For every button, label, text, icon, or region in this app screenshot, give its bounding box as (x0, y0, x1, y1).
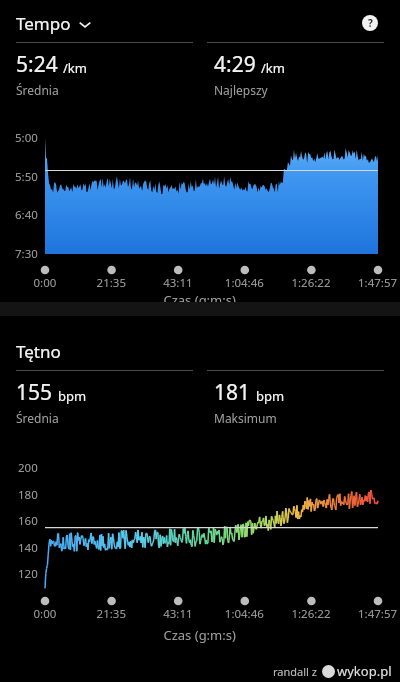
button[interactable]: Tętno (16, 340, 61, 363)
staticText: bpm (256, 387, 285, 405)
staticText: randall z (273, 664, 317, 679)
button[interactable]: Pomoc (356, 9, 384, 37)
staticText: Średnia (16, 82, 59, 98)
staticText: 5:24 (16, 50, 58, 79)
staticText: wykop.pl (337, 662, 392, 680)
staticText: ? (368, 16, 373, 30)
staticText: 181 (214, 378, 251, 407)
button[interactable]: 155 (16, 371, 200, 434)
button[interactable]: 4:29 (214, 43, 400, 106)
staticText: Maksimum (214, 410, 277, 426)
button[interactable]: Tempo (16, 12, 92, 35)
staticText: Tempo (16, 12, 71, 35)
staticText: Tętno (16, 340, 61, 363)
button[interactable]: 181 (214, 371, 400, 434)
staticText: 4:29 (214, 50, 256, 79)
button[interactable]: 5:24 (16, 43, 200, 106)
staticText: Najlepszy (214, 82, 268, 98)
staticText: Średnia (16, 410, 59, 426)
staticText: bpm (58, 387, 87, 405)
staticText: /km (63, 59, 87, 77)
staticText: /km (261, 59, 285, 77)
staticText: 155 (16, 378, 53, 407)
